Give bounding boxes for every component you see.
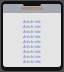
- button[interactable]: Article title: [3, 24, 61, 29]
- staticText: Article title: [23, 59, 41, 64]
- staticText: WIKIPEDIA: [21, 6, 43, 11]
- button[interactable]: Article title: [3, 59, 61, 64]
- staticText: Article title: [23, 29, 41, 34]
- button[interactable]: Article title: [3, 49, 61, 54]
- button[interactable]: Article title: [3, 19, 61, 24]
- button[interactable]: Article title: [3, 29, 61, 34]
- staticText: Article title: [23, 24, 41, 29]
- staticText: Article title: [23, 44, 41, 49]
- button[interactable]: Article title: [3, 44, 61, 49]
- staticText: Article title: [23, 39, 41, 44]
- staticText: Article title: [23, 19, 41, 24]
- button[interactable]: Article title: [3, 54, 61, 59]
- button[interactable]: Article title: [3, 39, 61, 44]
- button[interactable]: WIKIPEDIA: [3, 4, 61, 13]
- staticText: Article title: [23, 49, 41, 54]
- staticText: Article title: [23, 54, 41, 59]
- staticText: Article title: [23, 34, 41, 39]
- button[interactable]: Article title: [3, 34, 61, 39]
